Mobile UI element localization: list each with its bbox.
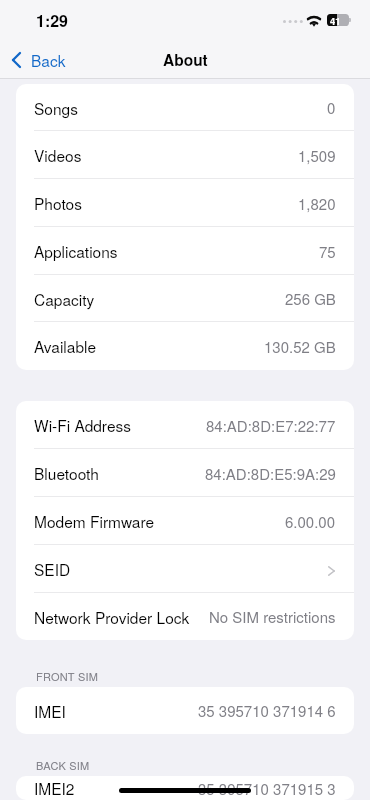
staticText: FRONT SIM [36,668,99,684]
button[interactable]: Capacity [16,275,354,322]
button[interactable]: Bluetooth [16,449,354,497]
staticText: 84:AD:8D:E7:22:77 [206,415,336,436]
staticText: 1:29 [36,9,69,32]
staticText: Wi-Fi Address [34,414,131,436]
staticText: IMEI2 [34,777,75,799]
other: Battery 41 percent [327,14,351,26]
staticText: No SIM restrictions [209,606,336,627]
staticText: Back [31,49,66,71]
staticText: 0 [327,97,336,118]
staticText: Bluetooth [34,462,99,484]
staticText: 35 395710 371914 6 [198,700,336,721]
staticText: Network Provider Lock [34,606,190,628]
button[interactable]: Videos [16,131,354,179]
button[interactable]: Available [16,322,354,370]
button[interactable]: Songs [16,84,354,131]
staticText: 130.52 GB [264,336,336,357]
staticText: 1,509 [298,145,336,166]
button[interactable]: Wi-Fi Address [16,401,354,449]
staticText: 41 [330,14,341,26]
button[interactable]: SEID [16,545,354,593]
staticText: IMEI [34,700,66,722]
staticText: About [163,49,208,71]
staticText: BACK SIM [36,757,90,773]
button[interactable]: Network Provider Lock [16,593,354,640]
button[interactable]: Back [0,40,74,79]
staticText: 1,820 [298,193,336,214]
staticText: Modem Firmware [34,510,155,532]
button[interactable]: IMEI2 [16,776,354,800]
staticText: Photos [34,192,82,214]
staticText: 84:AD:8D:E5:9A:29 [205,463,336,484]
staticText: Songs [34,97,78,119]
staticText: 6.00.00 [285,511,336,532]
staticText: 75 [319,241,336,262]
staticText: 35 395710 371915 3 [198,778,336,799]
button[interactable]: Applications [16,227,354,275]
button[interactable]: Photos [16,179,354,227]
staticText: Videos [34,144,82,166]
staticText: SEID [34,558,71,580]
staticText: Capacity [34,288,95,310]
button[interactable]: Modem Firmware [16,497,354,545]
staticText: Applications [34,240,118,262]
button[interactable]: IMEI [16,687,354,734]
staticText: 256 GB [285,288,336,309]
staticText: Available [34,335,97,357]
other: Home indicator [119,788,251,793]
